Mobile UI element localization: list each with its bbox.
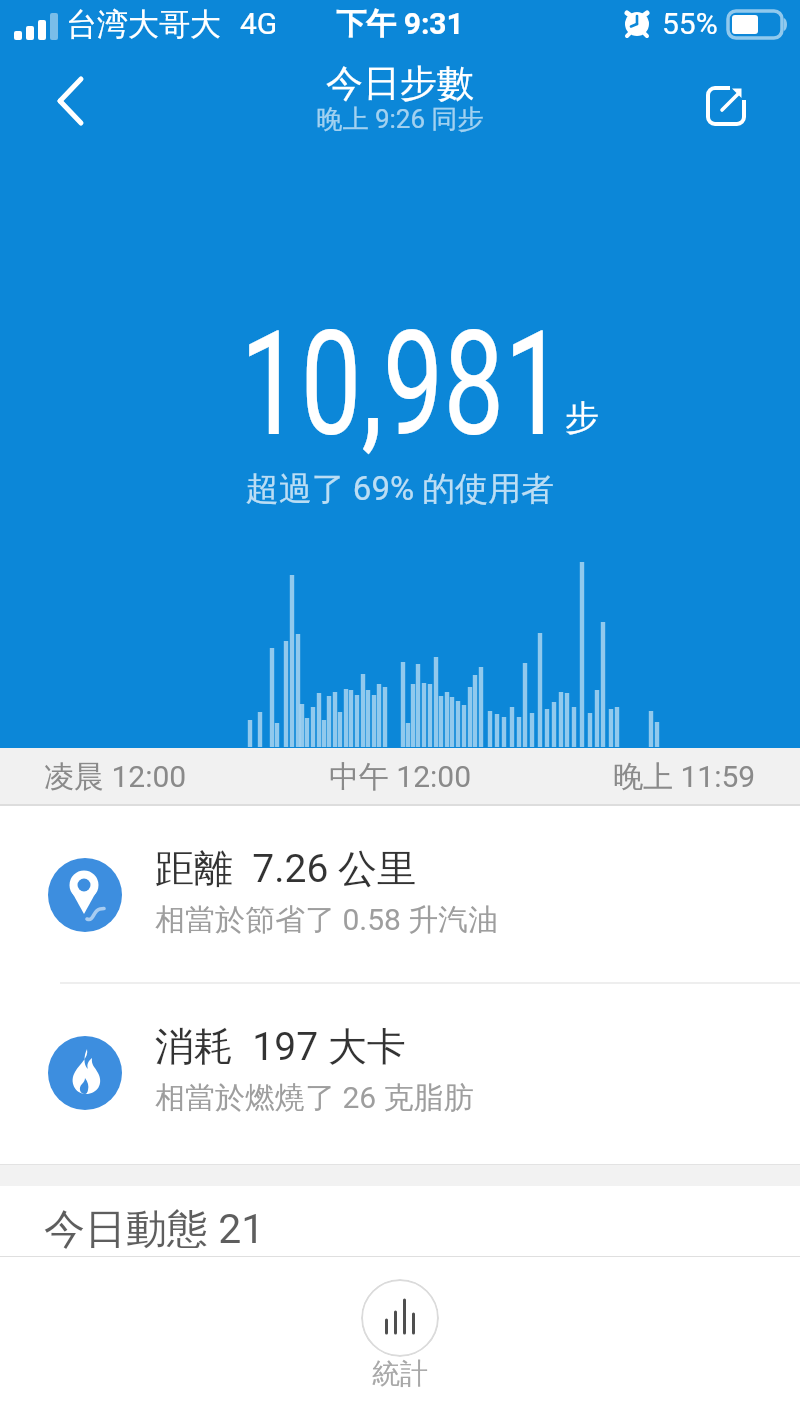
- staticText: 10,981: [240, 300, 565, 469]
- button[interactable]: 距離 7.26 公里: [0, 806, 800, 983]
- staticText: 相當於燃燒了 26 克脂肪: [155, 1079, 474, 1117]
- button[interactable]: [361, 1279, 439, 1357]
- staticText: 步: [565, 396, 599, 439]
- staticText: 超過了 69% 的使用者: [0, 468, 800, 510]
- staticText: 台湾大哥大: [66, 5, 221, 44]
- staticText: 今日步數: [0, 60, 800, 107]
- staticText: 凌晨 12:00: [44, 758, 187, 796]
- staticText: 4G: [240, 6, 278, 41]
- staticText: 今日動態 21: [44, 1204, 265, 1256]
- staticText: 中午 12:00: [0, 758, 800, 796]
- staticText: 55%: [662, 6, 718, 41]
- staticText: 相當於節省了 0.58 升汽油: [155, 901, 499, 939]
- staticText: 消耗 197 大卡: [155, 1022, 406, 1071]
- button[interactable]: 消耗 197 大卡: [0, 984, 800, 1160]
- button[interactable]: [706, 84, 746, 124]
- staticText: 統計: [0, 1356, 800, 1391]
- staticText: 晚上 9:26 同步: [0, 103, 800, 136]
- staticText: 距離 7.26 公里: [155, 844, 417, 893]
- staticText: 下午 9:31: [0, 5, 800, 43]
- staticText: 晚上 11:59: [613, 758, 756, 796]
- button[interactable]: [56, 77, 86, 125]
